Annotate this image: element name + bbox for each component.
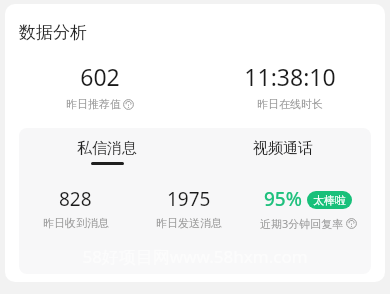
button[interactable]: 11:38:10 [195, 61, 385, 111]
other: 说明 [123, 99, 134, 110]
staticText: 私信消息 [77, 139, 137, 158]
staticText: 1975 [167, 186, 211, 212]
staticText: 95% [264, 186, 302, 212]
staticText: 昨日收到消息 [43, 216, 109, 230]
button[interactable]: 数据分析 [19, 22, 87, 43]
button[interactable]: 95% [245, 186, 371, 231]
button[interactable]: 1975 [132, 186, 245, 230]
button[interactable]: 828 [19, 186, 132, 230]
staticText: 昨日在线时长 [257, 97, 323, 111]
staticText: 视频通话 [253, 139, 313, 158]
other: 说明 [346, 218, 357, 229]
button[interactable]: 视频通话 [195, 139, 371, 165]
staticText: 11:38:10 [244, 61, 336, 92]
staticText: 昨日发送消息 [156, 216, 222, 230]
button[interactable]: 602 [5, 61, 195, 111]
staticText: 昨日推荐值 [66, 97, 121, 111]
staticText: 近期3分钟回复率 [260, 216, 344, 231]
staticText: 602 [80, 61, 120, 92]
staticText: 太棒啦 [313, 193, 346, 207]
button[interactable]: 私信消息 [19, 139, 195, 165]
staticText: 828 [59, 186, 92, 212]
